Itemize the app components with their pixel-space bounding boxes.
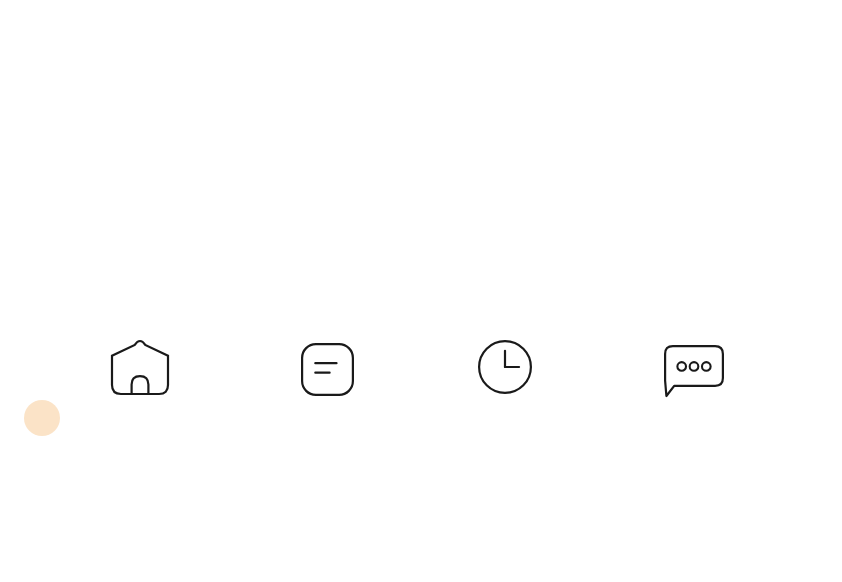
other: Accent dot — [24, 400, 60, 436]
button[interactable]: Clock — [478, 340, 532, 394]
button[interactable]: Notes — [301, 343, 354, 396]
button[interactable]: Messages — [664, 345, 724, 396]
button[interactable]: Home — [112, 338, 168, 394]
